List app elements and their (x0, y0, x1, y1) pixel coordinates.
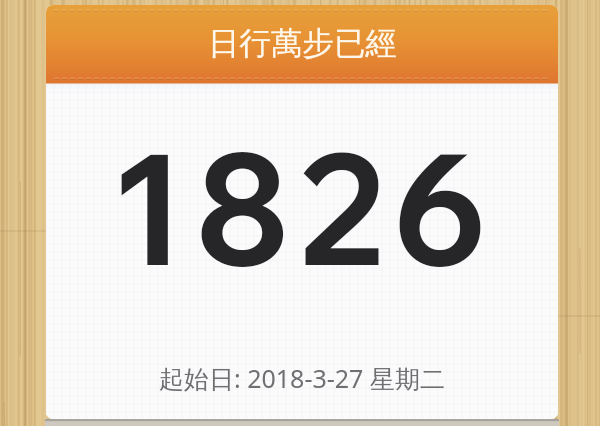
staticText: 起始日: 2018-3-27 星期二 (159, 361, 445, 395)
button[interactable]: 日行萬步已經 (46, 5, 558, 419)
staticText: 1826 (109, 111, 496, 304)
staticText: 日行萬步已經 (208, 24, 397, 64)
button[interactable]: 日行萬步已經 (46, 5, 558, 84)
